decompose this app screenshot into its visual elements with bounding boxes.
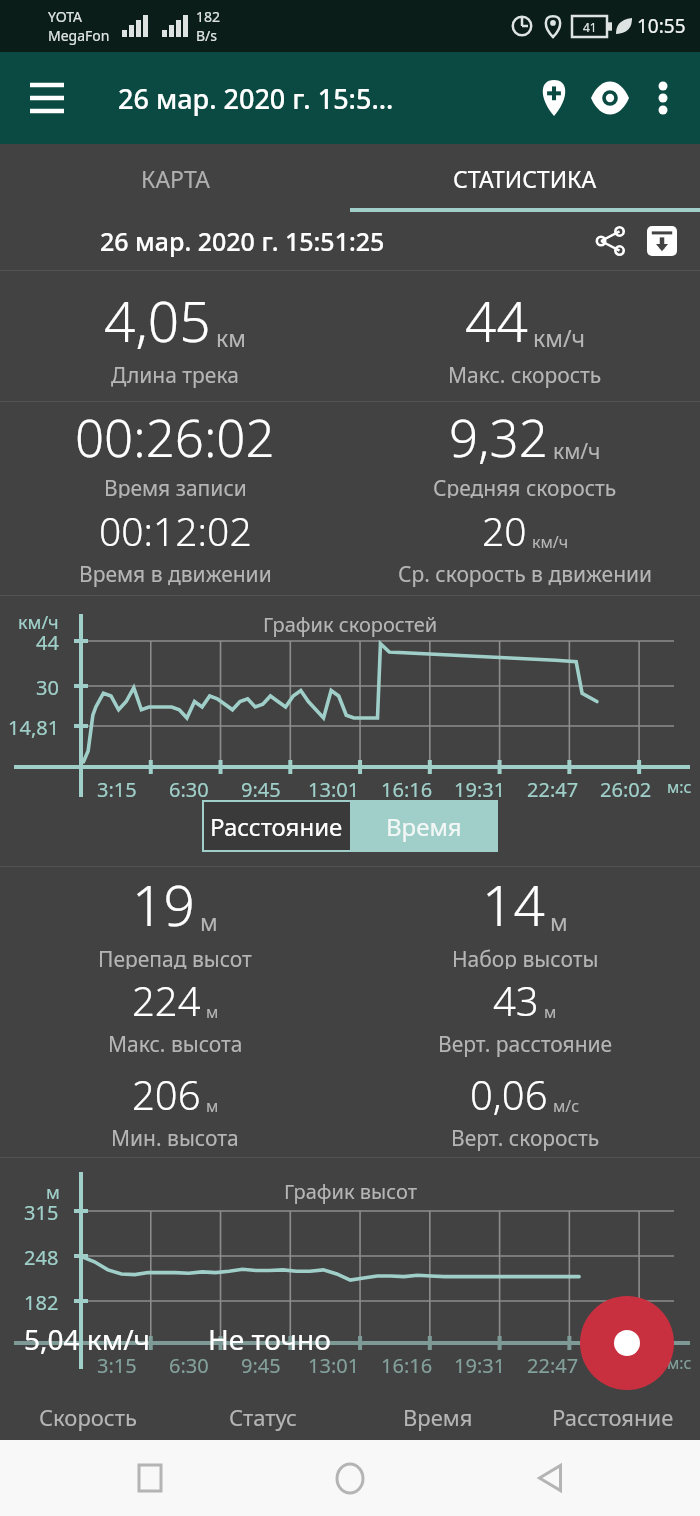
staticText: м [206,1095,219,1117]
staticText: 14 [482,867,545,942]
staticText: 00:26:02 [75,402,275,471]
button[interactable]: Visibility [582,70,638,126]
staticText: 26 мар. 2020 г. 15:51:25 [100,224,385,258]
staticText: Ср. скорость в движении [398,560,653,589]
staticText: Макс. высота [108,1030,243,1059]
button[interactable]: КАРТА [0,144,350,212]
staticText: км/ч [533,322,585,353]
staticText: Время [403,1402,473,1432]
staticText: 43 [493,973,539,1027]
staticText: 10:55 [637,13,686,39]
staticText: 30 [36,674,59,701]
button[interactable]: Download [636,215,688,267]
staticText: 182 [196,7,221,26]
staticText: 3:15 [97,1352,137,1379]
staticText: 19:31 [454,1352,506,1379]
button[interactable]: Время [350,800,498,852]
staticText: 13:01 [308,776,360,803]
staticText: Не точно [208,1320,331,1358]
staticText: 206 [132,1067,201,1121]
staticText: 26 мар. 2020 г. 15:5… [118,80,394,117]
staticText: км [216,322,246,353]
staticText: 0,06 [470,1067,548,1121]
staticText: м:с [667,776,692,798]
staticText: м [46,1180,60,1205]
staticText: Время записи [104,474,247,498]
staticText: 44 [36,629,59,656]
staticText: м [550,906,568,937]
staticText: График высот [284,1178,417,1205]
button[interactable]: Home [320,1448,380,1508]
staticText: м [544,1001,557,1023]
staticText: м:с [667,1352,692,1374]
staticText: Расстояние [210,810,343,843]
staticText: 00:12:02 [99,504,252,557]
staticText: 9,32 [449,402,548,471]
staticText: Верт. скорость [451,1124,600,1153]
staticText: Верт. расстояние [438,1030,613,1059]
staticText: СТАТИСТИКА [453,163,597,194]
staticText: км/ч [532,531,569,553]
button[interactable]: Record [580,1296,674,1390]
button[interactable]: СТАТИСТИКА [350,144,700,212]
button[interactable]: Share [584,215,636,267]
staticText: 224 [132,973,201,1027]
staticText: 26:02 [600,1352,652,1379]
staticText: 4,05 [104,283,211,358]
staticText: Длина трека [111,361,239,390]
button[interactable]: Back [520,1448,580,1508]
button[interactable]: More options [638,73,688,123]
staticText: 16:16 [381,1352,433,1379]
staticText: 5,04 км/ч [24,1320,151,1358]
staticText: Набор высоты [452,945,599,969]
staticText: Время [386,810,462,843]
staticText: B/s [196,26,218,45]
staticText: 19 [132,867,195,942]
staticText: км/ч [18,610,59,635]
staticText: м/с [553,1095,580,1117]
staticText: YOTA [48,7,82,26]
staticText: 20 [482,504,527,557]
staticText: 22:47 [527,776,579,803]
staticText: Средняя скорость [433,474,617,498]
staticText: MegaFon [48,26,110,45]
staticText: 6:30 [169,776,209,803]
button[interactable]: Recents [120,1448,180,1508]
staticText: Макс. скорость [448,361,602,390]
staticText: 9:45 [241,776,281,803]
staticText: 44 [465,283,528,358]
staticText: 14,81 [8,714,60,741]
staticText: Расстояние [552,1402,674,1432]
staticText: 248 [24,1244,59,1271]
staticText: 22:47 [527,1352,579,1379]
staticText: КАРТА [141,163,210,194]
staticText: м [206,1001,219,1023]
button[interactable]: Add waypoint [526,70,582,126]
staticText: м [200,906,218,937]
staticText: 3:15 [97,776,137,803]
staticText: 182 [24,1289,59,1316]
staticText: Статус [229,1402,297,1432]
staticText: Время в движении [79,560,272,589]
staticText: 26:02 [600,776,652,803]
staticText: 9:45 [241,1352,281,1379]
staticText: График скоростей [263,611,438,638]
staticText: 41 [583,19,597,35]
button[interactable]: Расстояние [202,800,350,852]
staticText: 6:30 [169,1352,209,1379]
staticText: Скорость [39,1402,137,1432]
staticText: 19:31 [454,776,506,803]
staticText: км/ч [553,437,601,466]
button[interactable]: Menu [18,69,76,127]
staticText: Перепад высот [98,945,252,969]
staticText: 13:01 [308,1352,360,1379]
staticText: 16:16 [381,776,433,803]
staticText: Мин. высота [111,1124,239,1153]
staticText: 315 [24,1199,59,1226]
